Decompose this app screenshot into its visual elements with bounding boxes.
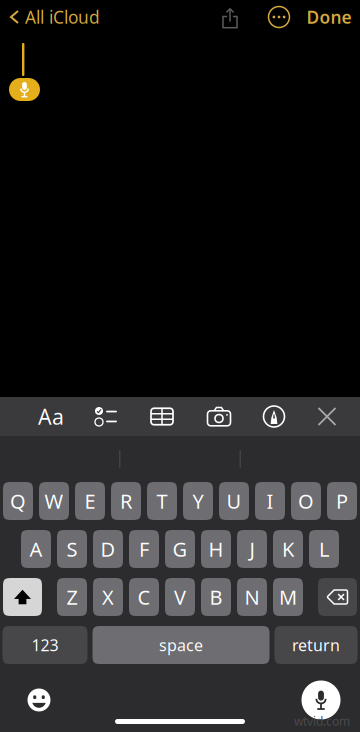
staticText: H xyxy=(208,536,223,562)
button[interactable]: D xyxy=(93,530,123,568)
button[interactable]: E xyxy=(75,482,105,520)
staticText: Done xyxy=(306,5,351,28)
button[interactable]: Q xyxy=(3,482,33,520)
staticText: space xyxy=(159,634,203,656)
staticText: V xyxy=(174,584,186,610)
button[interactable]: Emoji xyxy=(19,680,59,720)
button[interactable]: Z xyxy=(57,578,87,616)
button[interactable]: F xyxy=(129,530,159,568)
button[interactable]: Y xyxy=(183,482,213,520)
button[interactable]: B xyxy=(201,578,231,616)
staticText: wtvid.com xyxy=(294,713,350,729)
button[interactable]: O xyxy=(291,482,321,520)
button[interactable]: Shift xyxy=(3,578,42,616)
button[interactable]: Format xyxy=(28,397,74,436)
staticText: E xyxy=(84,488,95,514)
button[interactable]: H xyxy=(201,530,231,568)
button[interactable]: G xyxy=(165,530,195,568)
staticText: K xyxy=(282,536,294,562)
staticText: D xyxy=(100,536,115,562)
button[interactable]: I xyxy=(255,482,285,520)
button[interactable]: C xyxy=(129,578,159,616)
staticText: W xyxy=(44,488,63,514)
button[interactable]: Table xyxy=(139,397,185,436)
button[interactable]: X xyxy=(93,578,123,616)
button[interactable]: M xyxy=(273,578,303,616)
staticText: G xyxy=(172,536,187,562)
staticText: R xyxy=(120,488,132,514)
button[interactable]: K xyxy=(273,530,303,568)
button[interactable]: More xyxy=(263,0,295,34)
staticText: O xyxy=(298,488,314,514)
button[interactable]: P xyxy=(327,482,357,520)
button[interactable]: return xyxy=(274,626,357,664)
button[interactable]: 123 xyxy=(2,626,87,664)
button[interactable]: All iCloud xyxy=(0,0,110,34)
button[interactable]: space xyxy=(92,626,269,664)
staticText: Y xyxy=(192,488,203,514)
button[interactable]: Checklist xyxy=(83,397,129,436)
staticText: U xyxy=(226,488,241,514)
staticText: X xyxy=(102,584,114,610)
button[interactable]: A xyxy=(21,530,51,568)
button[interactable]: V xyxy=(165,578,195,616)
staticText: Q xyxy=(10,488,26,514)
staticText: M xyxy=(279,584,297,610)
staticText: P xyxy=(336,488,348,514)
button[interactable]: Delete xyxy=(318,578,357,616)
staticText: I xyxy=(266,488,273,514)
button[interactable]: L xyxy=(309,530,339,568)
button[interactable]: Dictation xyxy=(9,78,40,101)
button[interactable]: Markup xyxy=(251,397,297,436)
button[interactable]: T xyxy=(147,482,177,520)
button[interactable]: S xyxy=(57,530,87,568)
staticText: return xyxy=(292,634,340,656)
button[interactable]: J xyxy=(237,530,267,568)
button[interactable]: R xyxy=(111,482,141,520)
button[interactable]: N xyxy=(237,578,267,616)
button[interactable]: Share xyxy=(212,0,248,34)
button[interactable]: W xyxy=(39,482,69,520)
staticText: T xyxy=(156,488,167,514)
staticText: B xyxy=(209,584,222,610)
staticText: L xyxy=(319,536,329,562)
staticText: N xyxy=(244,584,259,610)
button[interactable]: Done xyxy=(303,0,355,34)
button[interactable]: Insert photo xyxy=(196,397,242,436)
staticText: All iCloud xyxy=(25,5,100,28)
button[interactable]: Close xyxy=(304,397,350,436)
staticText: F xyxy=(139,536,149,562)
staticText: A xyxy=(29,536,42,562)
staticText: J xyxy=(249,536,254,562)
staticText: 123 xyxy=(31,634,58,656)
button[interactable]: U xyxy=(219,482,249,520)
staticText: Z xyxy=(66,584,77,610)
staticText: Aa xyxy=(38,402,64,431)
staticText: S xyxy=(66,536,77,562)
button[interactable]: Dictation xyxy=(301,680,341,720)
staticText: C xyxy=(137,584,150,610)
